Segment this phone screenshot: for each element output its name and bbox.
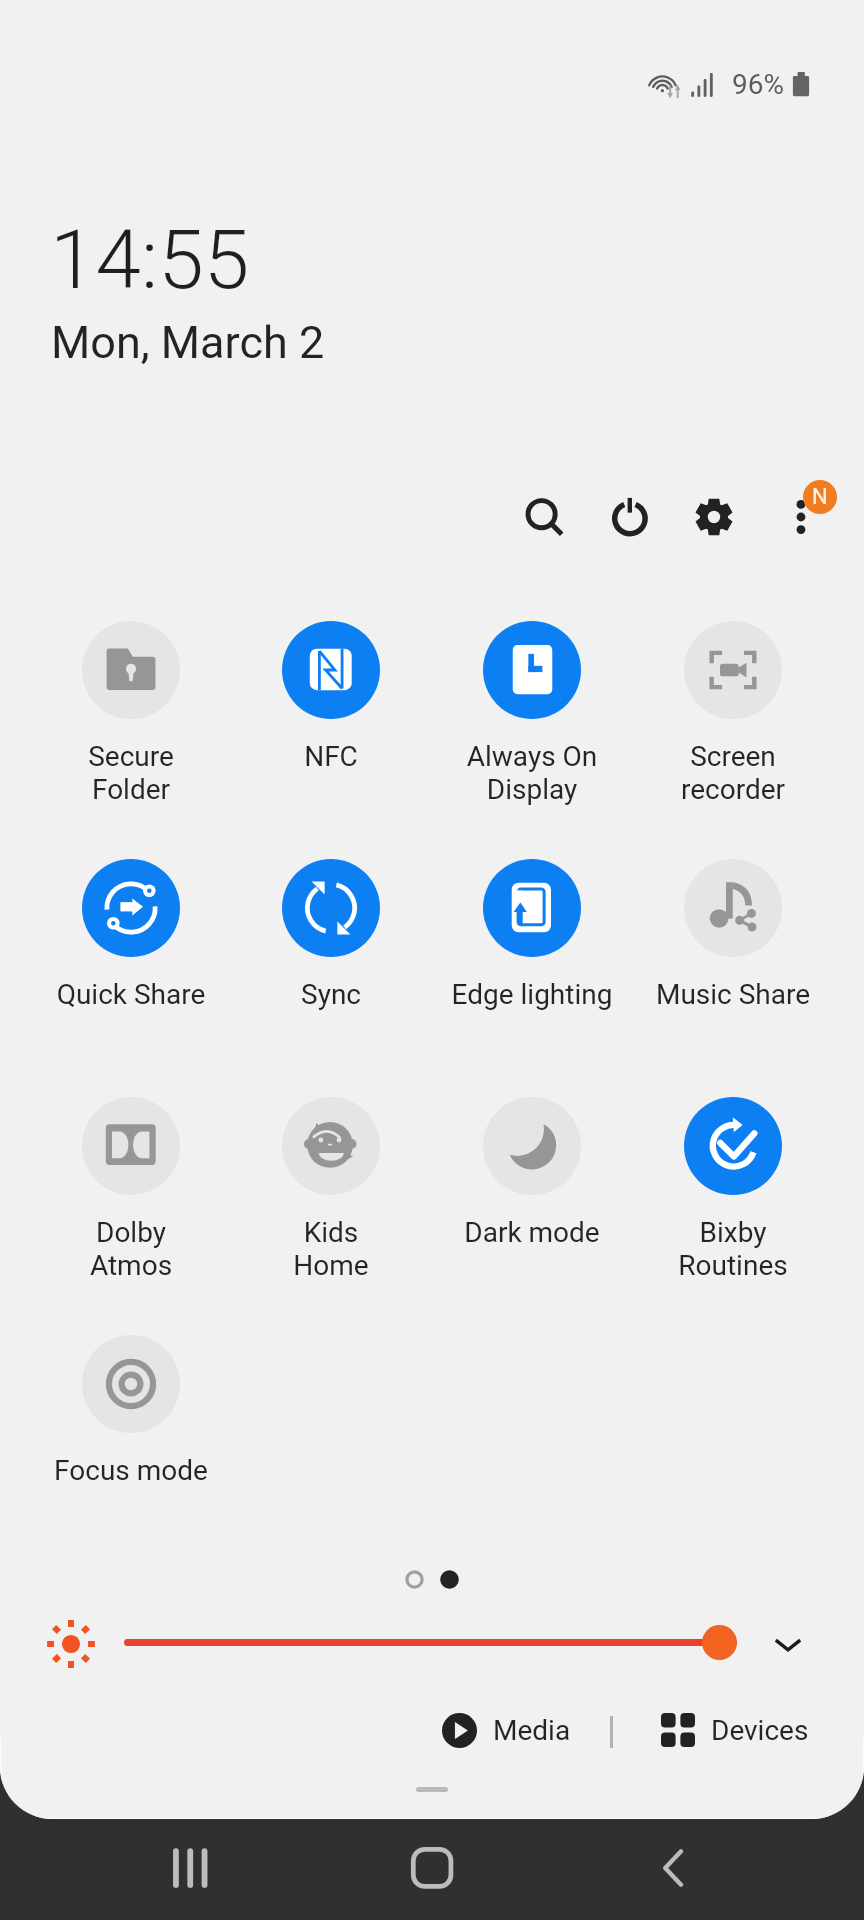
- staticText: Dark mode: [432, 1216, 632, 1249]
- button[interactable]: Edge lighting: [432, 859, 632, 1011]
- staticText: Focus mode: [31, 1454, 231, 1487]
- button[interactable]: Dark mode: [432, 1097, 632, 1249]
- button[interactable]: Screen recorder: [633, 621, 833, 806]
- button[interactable]: Dolby Atmos: [31, 1097, 231, 1282]
- button[interactable]: Back: [629, 1823, 719, 1913]
- button[interactable]: Secure Folder: [31, 621, 231, 806]
- staticText: Dolby Atmos: [31, 1216, 231, 1282]
- staticText: Music Share: [633, 978, 833, 1011]
- button[interactable]: Expand brightness: [758, 1615, 818, 1675]
- button[interactable]: Settings: [676, 479, 752, 555]
- button[interactable]: Focus mode: [31, 1335, 231, 1487]
- button[interactable]: Home: [387, 1823, 477, 1913]
- staticText: Devices: [711, 1714, 809, 1747]
- button[interactable]: Kids Home: [231, 1097, 431, 1282]
- staticText: Edge lighting: [432, 978, 632, 1011]
- button[interactable]: Always On Display: [432, 621, 632, 806]
- staticText: 14:55: [50, 212, 250, 308]
- staticText: NFC: [231, 740, 431, 773]
- button[interactable]: Bixby Routines: [633, 1097, 833, 1282]
- button[interactable]: Search: [506, 479, 582, 555]
- button[interactable]: Devices: [653, 1707, 817, 1753]
- button[interactable]: Recents: [147, 1823, 237, 1913]
- staticText: Sync: [231, 978, 431, 1011]
- staticText: Quick Share: [31, 978, 231, 1011]
- button[interactable]: Sync: [231, 859, 431, 1011]
- staticText: Secure Folder: [31, 740, 231, 806]
- button[interactable]: Media: [434, 1707, 579, 1754]
- staticText: Bixby Routines: [633, 1216, 833, 1282]
- staticText: 96%: [732, 68, 784, 101]
- staticText: N: [812, 484, 828, 510]
- staticText: Mon, March 2: [51, 316, 325, 369]
- button[interactable]: Music Share: [633, 859, 833, 1011]
- button[interactable]: Quick Share: [31, 859, 231, 1011]
- button[interactable]: NFC: [231, 621, 431, 773]
- staticText: Media: [493, 1714, 571, 1747]
- staticText: Kids Home: [231, 1216, 431, 1282]
- button[interactable]: Power: [591, 479, 667, 555]
- staticText: Screen recorder: [633, 740, 833, 806]
- button[interactable]: More options: [761, 479, 837, 555]
- staticText: Always On Display: [432, 740, 632, 806]
